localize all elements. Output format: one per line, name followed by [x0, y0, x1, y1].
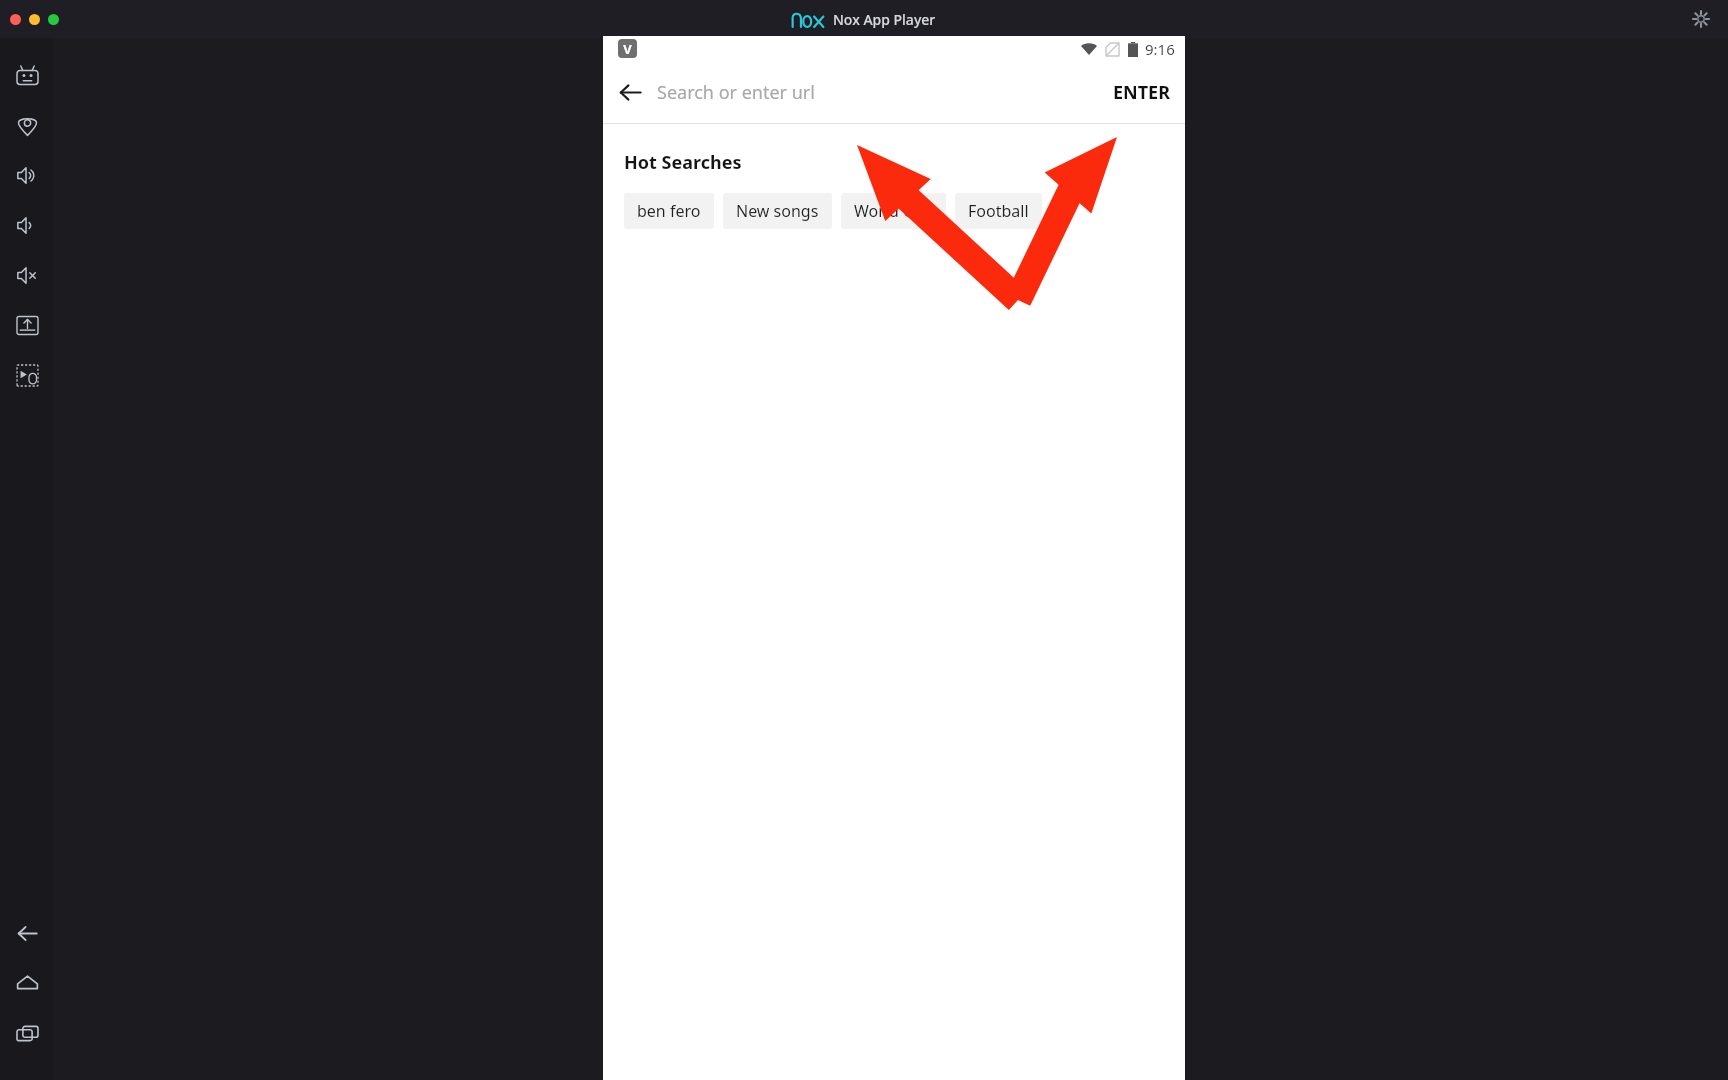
staticText: 9:16: [1145, 39, 1175, 59]
staticText: New songs: [736, 200, 819, 222]
button[interactable]: Macro recorder: [0, 350, 54, 400]
button[interactable]: Install APK: [0, 300, 54, 350]
button[interactable]: Home: [0, 958, 54, 1008]
staticText: ben fero: [637, 200, 701, 222]
button[interactable]: Back: [0, 908, 54, 958]
button[interactable]: Back: [603, 61, 657, 123]
staticText: Nox App Player: [833, 10, 936, 29]
button[interactable]: [29, 14, 40, 25]
button[interactable]: [48, 14, 59, 25]
button[interactable]: Recents: [0, 1008, 54, 1058]
button[interactable]: Settings: [1688, 6, 1714, 32]
button[interactable]: World Cup: [841, 193, 946, 229]
staticText: Search or enter url: [657, 80, 815, 105]
button[interactable]: Location: [0, 100, 54, 150]
button[interactable]: Volume up: [0, 150, 54, 200]
button[interactable]: New songs: [723, 193, 832, 229]
staticText: Hot Searches: [624, 150, 742, 175]
staticText: ENTER: [1113, 80, 1170, 105]
button[interactable]: ENTER: [1113, 61, 1170, 123]
button[interactable]: ben fero: [624, 193, 714, 229]
staticText: V: [623, 40, 632, 58]
button[interactable]: Volume down: [0, 200, 54, 250]
button[interactable]: Keyboard mapping: [0, 50, 54, 100]
button[interactable]: [10, 14, 21, 25]
button[interactable]: Mute: [0, 250, 54, 300]
button[interactable]: Football: [955, 193, 1042, 229]
staticText: Football: [968, 200, 1029, 222]
staticText: World Cup: [854, 200, 933, 222]
button[interactable]: Search or enter url: [657, 61, 1098, 123]
